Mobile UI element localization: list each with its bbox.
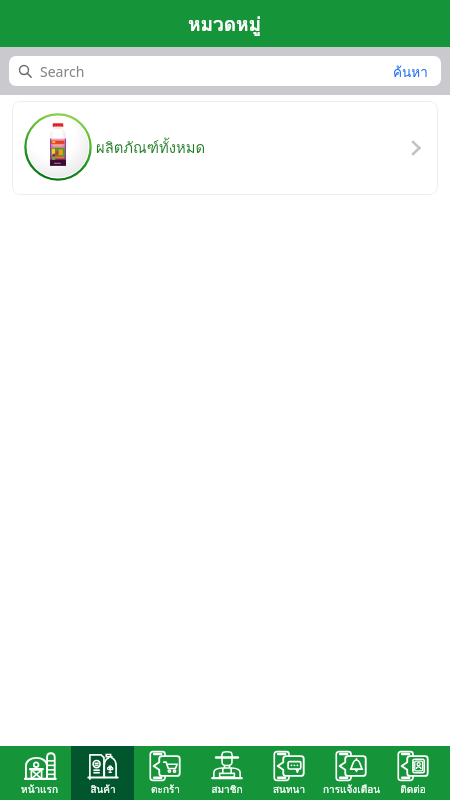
staticText: ติดต่อ xyxy=(400,782,426,798)
staticText: ผลิตภัณฑ์ทั้งหมด xyxy=(96,136,206,160)
button[interactable]: Search xyxy=(9,56,383,86)
button[interactable]: การแจ้งเตือน xyxy=(320,746,382,800)
staticText: ตะกร้า xyxy=(151,782,180,798)
button[interactable]: ติดต่อ xyxy=(382,746,444,800)
staticText: สนทนา xyxy=(273,782,305,798)
staticText: สินค้า xyxy=(90,782,116,798)
staticText: หน้าแรก xyxy=(21,782,58,798)
staticText: ค้นหา xyxy=(393,61,428,82)
button[interactable]: สนทนา xyxy=(258,746,320,800)
button[interactable]: ตะกร้า xyxy=(134,746,196,800)
button[interactable]: ค้นหา xyxy=(383,56,441,86)
button[interactable]: หน้าแรก xyxy=(8,746,71,800)
other: Open all products xyxy=(404,136,428,160)
staticText: สมาชิก xyxy=(211,782,243,798)
button[interactable]: ผลิตภัณฑ์ทั้งหมด xyxy=(12,101,438,195)
button[interactable]: สมาชิก xyxy=(196,746,258,800)
staticText: การแจ้งเตือน xyxy=(323,782,380,798)
button[interactable]: สินค้า xyxy=(71,746,134,800)
staticText: Search xyxy=(40,62,85,81)
staticText: หมวดหมู่ xyxy=(188,9,262,39)
